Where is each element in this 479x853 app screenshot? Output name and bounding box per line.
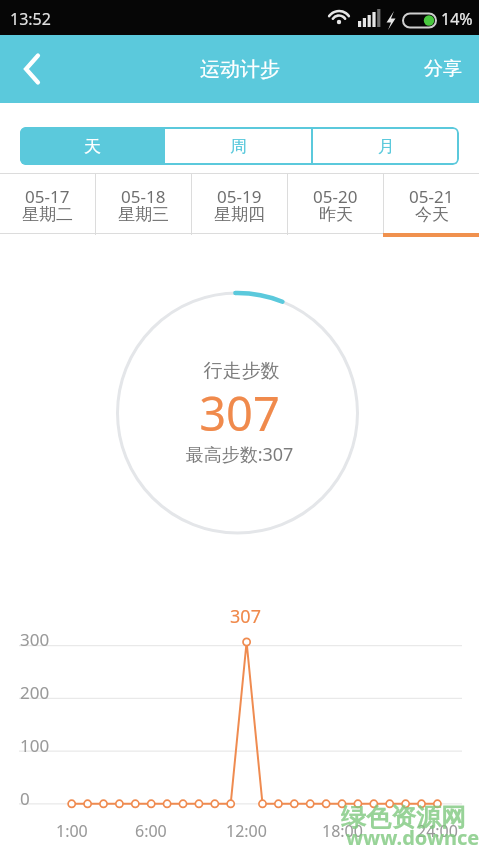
staticText: 今天	[415, 204, 449, 225]
staticText: 1:00	[56, 820, 88, 842]
button[interactable]: 天	[20, 127, 165, 165]
button[interactable]: 月	[313, 127, 459, 165]
staticText: 周	[230, 136, 247, 157]
button[interactable]	[0, 35, 60, 103]
button[interactable]: 05-18	[96, 173, 191, 236]
staticText: 307	[6, 604, 479, 629]
staticText: 星期三	[118, 204, 169, 225]
staticText: 最高步数:307	[0, 442, 479, 467]
staticText: 12:00	[226, 820, 267, 842]
staticText: 星期二	[22, 204, 73, 225]
staticText: 月	[378, 136, 395, 157]
staticText: 24:00	[417, 820, 458, 842]
staticText: 星期四	[214, 204, 265, 225]
staticText: 05-17	[25, 185, 70, 208]
staticText: 行走步数	[2, 359, 479, 383]
button[interactable]: 分享	[424, 57, 462, 81]
staticText: 运动计步	[200, 57, 280, 82]
staticText: 18:00	[322, 820, 363, 842]
button[interactable]: 周	[165, 127, 311, 165]
staticText: 05-18	[121, 185, 166, 208]
staticText: 307	[0, 381, 479, 445]
staticText: 6:00	[135, 820, 167, 842]
button[interactable]: 05-19	[192, 173, 287, 236]
staticText: 05-21	[409, 185, 454, 208]
staticText: 绿色资源网	[341, 802, 466, 833]
staticText: 13:52	[10, 8, 51, 30]
staticText: 100	[20, 734, 50, 757]
button[interactable]: 05-17	[0, 173, 95, 236]
staticText: 05-19	[217, 185, 262, 208]
staticText: 05-20	[313, 185, 358, 208]
button[interactable]: 05-21	[384, 173, 479, 236]
staticText: 昨天	[319, 204, 353, 225]
staticText: 300	[20, 628, 50, 651]
button[interactable]: 05-20	[288, 173, 383, 236]
staticText: 14%	[441, 8, 473, 30]
staticText: 0	[20, 787, 30, 810]
staticText: www.downce.com	[346, 824, 479, 851]
staticText: 分享	[424, 57, 462, 81]
staticText: 天	[84, 136, 101, 157]
staticText: 200	[20, 681, 50, 704]
